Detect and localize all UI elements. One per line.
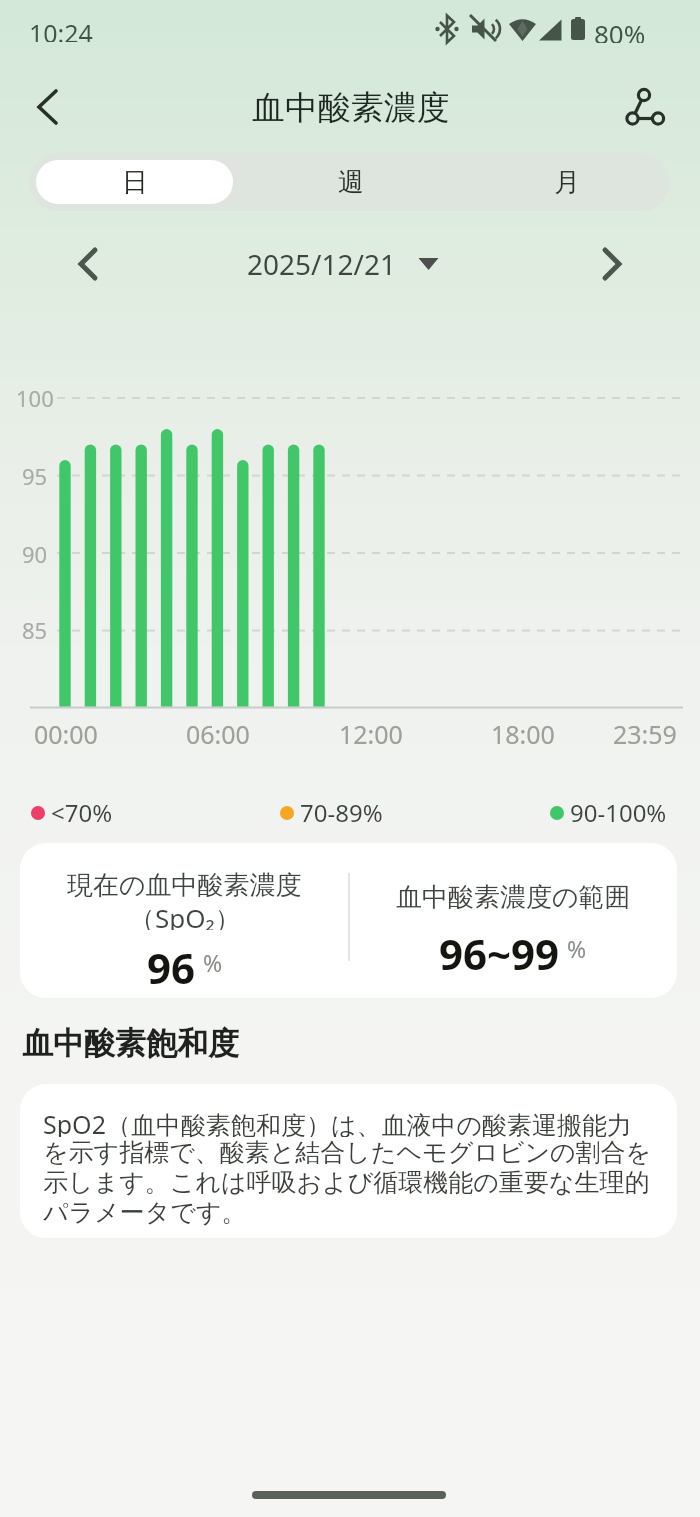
staticText: % bbox=[567, 933, 587, 964]
staticText: 90-100% bbox=[570, 796, 667, 829]
staticText: 100 bbox=[16, 383, 54, 413]
button[interactable]: 週 bbox=[246, 153, 456, 211]
button[interactable] bbox=[587, 239, 637, 289]
staticText: 血中酸素濃度 bbox=[252, 87, 450, 129]
button[interactable]: 現在の血中酸素濃度 bbox=[20, 843, 677, 998]
staticText: 18:00 bbox=[491, 717, 555, 749]
button[interactable] bbox=[618, 82, 674, 134]
staticText: 現在の血中酸素濃度 bbox=[67, 869, 302, 899]
staticText: SpO2（血中酸素飽和度）は、血液中の酸素運搬能力 bbox=[43, 1107, 633, 1137]
staticText: 70-89% bbox=[300, 796, 383, 829]
staticText: 月 bbox=[554, 166, 580, 199]
staticText: 2025/12/21 bbox=[247, 245, 396, 283]
button[interactable] bbox=[16, 83, 76, 133]
staticText: 週 bbox=[338, 166, 364, 199]
staticText: 日 bbox=[122, 166, 148, 199]
staticText: 00:00 bbox=[34, 717, 98, 749]
staticText: 示します。これは呼吸および循環機能の重要な生理的 bbox=[43, 1167, 650, 1197]
button[interactable]: 日 bbox=[36, 160, 233, 204]
staticText: 96~99 bbox=[439, 925, 560, 971]
staticText: 血中酸素濃度の範囲 bbox=[396, 881, 631, 911]
button[interactable]: 2025/12/21 bbox=[243, 239, 443, 289]
staticText: 12:00 bbox=[339, 717, 403, 749]
staticText: パラメータです。 bbox=[43, 1197, 247, 1227]
staticText: 10:24 bbox=[29, 16, 93, 42]
staticText: 95 bbox=[22, 461, 48, 491]
button[interactable]: 月 bbox=[462, 153, 670, 211]
staticText: 23:59 bbox=[613, 717, 677, 749]
staticText: （SpO₂） bbox=[129, 900, 241, 930]
staticText: 96 bbox=[147, 939, 196, 985]
button[interactable] bbox=[63, 239, 113, 289]
staticText: 血中酸素飽和度 bbox=[22, 1024, 239, 1062]
staticText: を示す指標で、酸素と結合したヘモグロビンの割合を bbox=[43, 1137, 652, 1167]
staticText: % bbox=[203, 947, 223, 978]
staticText: <70% bbox=[51, 796, 113, 829]
staticText: 90 bbox=[22, 539, 48, 569]
staticText: 85 bbox=[22, 615, 48, 645]
staticText: 80% bbox=[594, 16, 646, 43]
staticText: 06:00 bbox=[186, 717, 250, 749]
